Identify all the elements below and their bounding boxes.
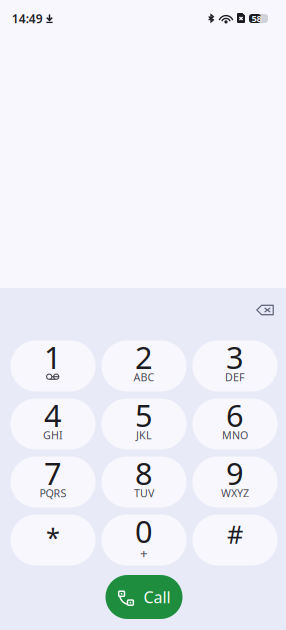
button[interactable]: 1: [10, 340, 95, 391]
staticText: DEF: [225, 370, 245, 384]
button[interactable]: 7: [10, 456, 95, 507]
button[interactable]: Call: [105, 575, 182, 619]
button[interactable]: 6: [192, 398, 277, 449]
button[interactable]: 4: [10, 398, 95, 449]
button[interactable]: 2: [101, 340, 186, 391]
staticText: 1: [44, 337, 62, 377]
button[interactable]: 3: [192, 340, 277, 391]
staticText: TUV: [134, 486, 154, 500]
staticText: 6: [226, 395, 244, 435]
staticText: PQRS: [39, 486, 66, 500]
staticText: WXYZ: [221, 486, 249, 500]
staticText: JKL: [136, 428, 152, 442]
staticText: 14:49: [12, 10, 43, 26]
staticText: 3: [226, 337, 244, 377]
staticText: 9: [226, 453, 244, 493]
staticText: Call: [143, 586, 170, 608]
staticText: #: [227, 517, 243, 551]
button[interactable]: 8: [101, 456, 186, 507]
staticText: 5: [135, 395, 153, 435]
staticText: 4: [44, 395, 62, 435]
staticText: 8: [135, 453, 153, 493]
staticText: +: [140, 544, 148, 562]
staticText: 2: [135, 337, 153, 377]
staticText: 0: [135, 511, 153, 551]
button[interactable]: 9: [192, 456, 277, 507]
staticText: GHI: [43, 428, 63, 442]
staticText: MNO: [222, 428, 248, 442]
staticText: ABC: [133, 370, 154, 384]
button[interactable]: Delete: [248, 295, 282, 325]
button[interactable]: 0: [101, 514, 186, 565]
button[interactable]: #: [192, 514, 277, 565]
button[interactable]: 5: [101, 398, 186, 449]
staticText: 58: [251, 12, 261, 25]
button[interactable]: *: [10, 514, 95, 565]
staticText: *: [46, 520, 60, 554]
staticText: 7: [44, 453, 62, 493]
